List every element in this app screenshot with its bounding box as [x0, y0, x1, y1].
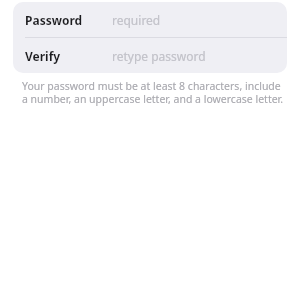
staticText: retype password	[112, 48, 206, 64]
staticText: required	[112, 12, 161, 28]
staticText: Verify	[25, 48, 61, 64]
staticText: Your password must be at least 8 charact…	[22, 79, 286, 106]
staticText: Password	[25, 12, 83, 28]
button[interactable]: Password	[13, 2, 287, 37]
button[interactable]: Verify	[13, 38, 287, 73]
